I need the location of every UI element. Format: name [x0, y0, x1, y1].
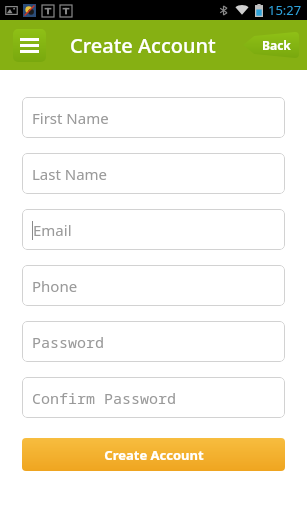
- staticText: Last Name: [32, 164, 108, 184]
- staticText: Create Account: [104, 446, 204, 464]
- button[interactable]: Menu: [13, 29, 46, 62]
- staticText: Back: [262, 37, 291, 53]
- button[interactable]: Email: [22, 209, 285, 250]
- staticText: Confirm Password: [32, 388, 177, 408]
- button[interactable]: First Name: [22, 97, 285, 138]
- button[interactable]: Back: [243, 32, 299, 58]
- button[interactable]: Password: [22, 321, 285, 362]
- button[interactable]: Last Name: [22, 153, 285, 194]
- button[interactable]: Phone: [22, 265, 285, 306]
- button[interactable]: Create Account: [22, 438, 285, 471]
- staticText: Phone: [32, 276, 78, 296]
- staticText: Email: [33, 220, 72, 240]
- staticText: 15:27: [268, 1, 302, 19]
- staticText: First Name: [32, 108, 109, 128]
- staticText: Create Account: [70, 32, 216, 59]
- button[interactable]: Confirm Password: [22, 377, 285, 418]
- staticText: Password: [32, 332, 105, 352]
